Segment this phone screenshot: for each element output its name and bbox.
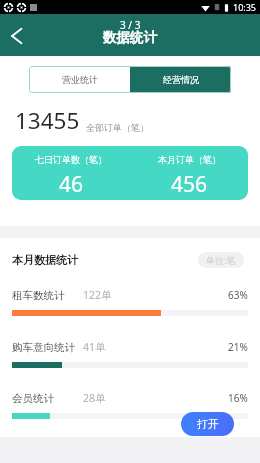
staticText: 打开 [197, 417, 219, 431]
staticText: 七日订单数（笔） [35, 154, 107, 165]
staticText: 数据统计 [103, 29, 157, 46]
staticText: 经营情况 [163, 74, 199, 85]
staticText: 28单 [83, 391, 106, 405]
button[interactable]: 打开 [181, 412, 234, 436]
button[interactable]: 经营情况 [130, 66, 231, 93]
button[interactable]: Back [0, 14, 34, 56]
button[interactable]: 单位:笔 [206, 252, 236, 268]
staticText: 41单 [83, 340, 106, 354]
staticText: 全部订单（笔） [86, 122, 149, 133]
button[interactable]: 本月订单（笔） [130, 146, 248, 200]
staticText: 46 [59, 170, 84, 199]
staticText: 购车意向统计 [12, 341, 75, 354]
staticText: 456 [171, 170, 208, 199]
button[interactable]: 七日订单数（笔） [12, 146, 130, 200]
staticText: 122单 [83, 288, 112, 302]
staticText: 本月订单（笔） [158, 154, 221, 165]
staticText: 会员统计 [12, 392, 54, 405]
staticText: 63% [228, 288, 248, 302]
staticText: 13455 [15, 105, 80, 136]
staticText: 本月数据统计 [12, 253, 78, 267]
staticText: 营业统计 [62, 74, 98, 85]
staticText: 16% [228, 391, 248, 405]
staticText: 3 / 3 [120, 18, 141, 32]
staticText: 10:35 [233, 1, 257, 13]
staticText: 租车数统计 [12, 289, 65, 302]
button[interactable]: 营业统计 [29, 66, 130, 93]
staticText: 21% [228, 340, 248, 354]
staticText: 单位:笔 [206, 254, 236, 266]
